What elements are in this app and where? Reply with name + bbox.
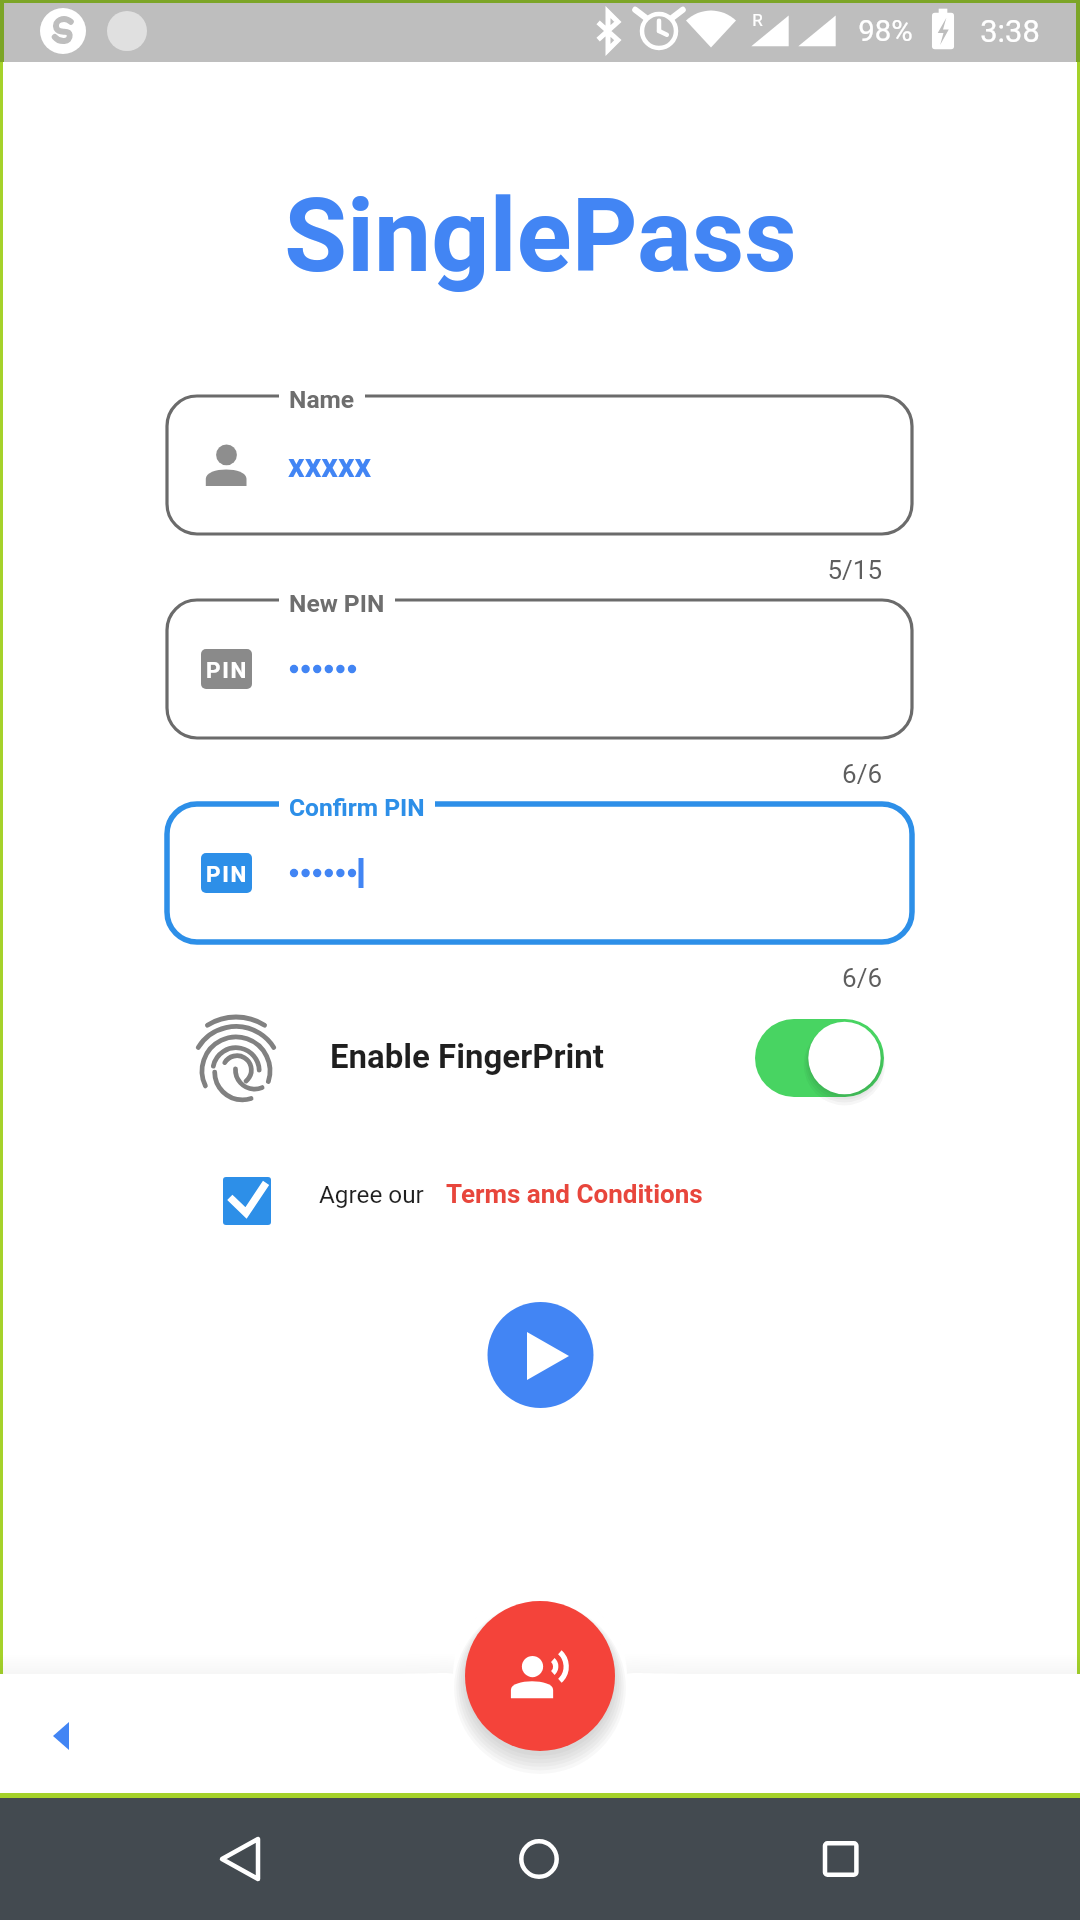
staticText: Agree our: [319, 1180, 424, 1208]
button[interactable]: Agree to terms checkbox: [224, 1172, 272, 1220]
staticText: 6/6: [842, 963, 882, 993]
staticText: New PIN: [289, 589, 385, 618]
staticText: Confirm PIN: [289, 793, 425, 822]
staticText: SinglePass: [284, 176, 797, 296]
button[interactable]: Record voice over: [465, 1601, 615, 1751]
staticText: Name: [289, 385, 355, 414]
staticText: PIN: [206, 657, 248, 683]
staticText: 5/15: [827, 555, 882, 585]
button[interactable]: New PIN field: [167, 600, 912, 738]
button[interactable]: Back: [190, 1812, 290, 1892]
button[interactable]: Play: [488, 1303, 592, 1407]
staticText: 98%: [858, 14, 913, 48]
button[interactable]: Terms and Conditions: [440, 1178, 706, 1216]
staticText: PIN: [206, 861, 248, 887]
staticText: xxxxx: [288, 447, 372, 485]
button[interactable]: Enable fingerprint toggle: [755, 1019, 884, 1097]
button[interactable]: Home: [490, 1812, 590, 1892]
staticText: Terms and Conditions: [446, 1179, 703, 1209]
button[interactable]: Name field: [167, 396, 912, 534]
staticText: 3:38: [980, 13, 1040, 49]
staticText: R: [752, 10, 763, 30]
button[interactable]: Recents: [790, 1812, 890, 1892]
button[interactable]: Back: [28, 1706, 94, 1766]
button[interactable]: Confirm PIN field: [167, 804, 912, 942]
staticText: 6/6: [842, 759, 882, 789]
staticText: Enable FingerPrint: [330, 1037, 604, 1076]
